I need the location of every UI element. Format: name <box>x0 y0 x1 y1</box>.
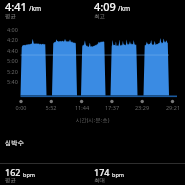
staticText: 4:20 <box>7 36 18 43</box>
staticText: 최고 <box>94 13 105 20</box>
staticText: 5:00 <box>7 57 18 64</box>
staticText: 5:20 <box>7 68 18 75</box>
staticText: 17:37 <box>102 104 122 111</box>
staticText: bpm <box>23 171 35 178</box>
button[interactable]: 162 <box>5 166 35 185</box>
staticText: 23:29 <box>132 104 152 111</box>
staticText: 5:52 <box>41 104 61 111</box>
staticText: 162 <box>5 166 21 178</box>
button[interactable]: 4:09 <box>94 0 130 21</box>
staticText: 평균 <box>5 13 16 20</box>
staticText: 4:41 <box>5 0 27 14</box>
staticText: bpm <box>112 171 124 178</box>
staticText: 최대 <box>94 177 105 184</box>
staticText: 29:21 <box>163 104 183 111</box>
staticText: 평균 <box>5 177 16 184</box>
button[interactable]: 4:41 <box>5 0 41 21</box>
staticText: 5:40 <box>7 78 18 85</box>
button[interactable]: 174 <box>94 166 124 185</box>
staticText: 시간(시:분:초) <box>0 116 185 124</box>
staticText: 4:40 <box>7 47 18 54</box>
staticText: 4:09 <box>94 0 116 14</box>
staticText: 0:00 <box>11 104 31 111</box>
staticText: 11:44 <box>72 104 92 111</box>
staticText: 174 <box>94 166 110 178</box>
staticText: 4:00 <box>7 26 18 33</box>
staticText: 심박수 <box>5 139 24 147</box>
staticText: /km <box>29 4 41 13</box>
staticText: /km <box>118 4 130 13</box>
